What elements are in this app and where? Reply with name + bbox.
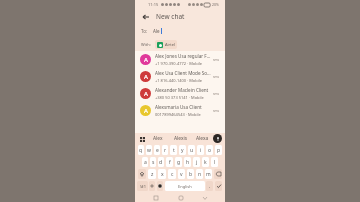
staticText: New chat xyxy=(156,12,185,21)
button[interactable]: d xyxy=(158,157,164,167)
button[interactable]: p xyxy=(215,145,222,155)
staticText: 0017899464543 · Mobile xyxy=(155,112,201,117)
button[interactable]: t xyxy=(170,145,177,155)
button[interactable]: Backspace xyxy=(214,169,222,179)
staticText: x xyxy=(161,171,164,178)
staticText: Alexander Maclein Client xyxy=(155,87,209,93)
button[interactable]: Settings xyxy=(149,181,155,191)
button[interactable]: a xyxy=(142,157,148,167)
staticText: sms xyxy=(213,58,220,62)
button[interactable]: !#1 xyxy=(137,181,148,191)
staticText: r xyxy=(164,147,167,154)
staticText: y xyxy=(181,147,184,154)
staticText: p xyxy=(217,147,221,154)
button[interactable]: . xyxy=(206,181,213,191)
staticText: 11:15 xyxy=(148,2,159,7)
staticText: h xyxy=(186,159,190,166)
staticText: sms xyxy=(213,109,220,113)
button[interactable]: y xyxy=(179,145,186,155)
staticText: +380 50 373 5141 · Mobile xyxy=(155,95,204,100)
staticText: To: xyxy=(141,28,148,34)
button[interactable]: A xyxy=(135,102,225,119)
button[interactable]: A xyxy=(135,68,225,85)
button[interactable]: m xyxy=(205,169,212,179)
button[interactable]: Back xyxy=(201,194,208,201)
staticText: d xyxy=(159,159,163,166)
button[interactable]: Alex xyxy=(146,133,169,144)
staticText: !#1 xyxy=(140,184,146,189)
button[interactable]: j xyxy=(193,157,200,167)
button[interactable]: c xyxy=(168,169,176,179)
button[interactable]: Language xyxy=(157,181,163,191)
staticText: A xyxy=(144,73,148,81)
button[interactable]: i xyxy=(197,145,204,155)
button[interactable]: Done xyxy=(215,181,222,191)
staticText: Alex Usa Client Mode Solar Site xyxy=(155,70,211,76)
staticText: g xyxy=(177,159,181,166)
staticText: . xyxy=(209,183,211,190)
button[interactable]: Recents xyxy=(152,194,159,201)
staticText: z xyxy=(151,171,154,178)
staticText: o xyxy=(208,147,212,154)
button[interactable]: A xyxy=(135,51,225,68)
button[interactable]: n xyxy=(196,169,203,179)
staticText: b xyxy=(189,171,193,178)
button[interactable]: k xyxy=(202,157,209,167)
staticText: English xyxy=(178,184,192,189)
staticText: Alexa xyxy=(196,135,209,142)
staticText: With: xyxy=(141,42,151,47)
staticText: Alex Jones Usa regular Fiverr ... xyxy=(155,53,211,59)
staticText: m xyxy=(206,171,211,178)
button[interactable]: w xyxy=(146,145,152,155)
staticText: l xyxy=(214,159,216,166)
staticText: sms xyxy=(213,75,220,79)
staticText: A xyxy=(144,90,148,98)
button[interactable]: Alexa xyxy=(191,133,213,144)
button[interactable]: Keyboard menu xyxy=(138,135,146,143)
staticText: sms xyxy=(213,92,220,96)
staticText: w xyxy=(147,147,151,154)
button[interactable]: A xyxy=(135,85,225,102)
button[interactable]: r xyxy=(162,145,168,155)
button[interactable]: Home xyxy=(177,194,184,201)
staticText: Alexsmaria Usa Client xyxy=(155,104,202,110)
staticText: A xyxy=(144,107,148,115)
staticText: Ale xyxy=(153,28,160,34)
button[interactable]: o xyxy=(206,145,213,155)
button[interactable]: s xyxy=(150,157,156,167)
button[interactable]: u xyxy=(188,145,195,155)
staticText: a xyxy=(144,159,147,166)
staticText: Alex xyxy=(153,135,163,142)
button[interactable]: z xyxy=(148,169,156,179)
staticText: e xyxy=(156,147,159,154)
button[interactable]: b xyxy=(187,169,194,179)
staticText: +1 970-390-4772 · Mobile xyxy=(155,61,203,66)
staticText: t xyxy=(173,147,175,154)
staticText: Airtel xyxy=(165,42,175,47)
staticText: 20% xyxy=(212,2,219,7)
staticText: n xyxy=(198,171,202,178)
button[interactable]: f xyxy=(166,157,173,167)
staticText: s xyxy=(152,159,155,166)
staticText: k xyxy=(204,159,207,166)
button[interactable]: l xyxy=(211,157,218,167)
staticText: A xyxy=(144,56,148,64)
button[interactable]: Voice input xyxy=(213,134,222,143)
button[interactable]: e xyxy=(154,145,160,155)
button[interactable]: Airtel xyxy=(155,40,177,49)
staticText: i xyxy=(200,147,202,154)
button[interactable]: English xyxy=(165,181,205,191)
button[interactable]: q xyxy=(138,145,144,155)
button[interactable]: x xyxy=(158,169,166,179)
button[interactable]: Back xyxy=(140,11,151,22)
staticText: q xyxy=(139,147,143,154)
button[interactable]: v xyxy=(178,169,185,179)
button[interactable]: Alexis xyxy=(169,133,191,144)
staticText: +1 816-440-1400 · Mobile xyxy=(155,78,203,83)
staticText: f xyxy=(169,159,171,166)
staticText: u xyxy=(190,147,194,154)
button[interactable]: h xyxy=(184,157,191,167)
staticText: Alexis xyxy=(174,135,187,142)
button[interactable]: g xyxy=(175,157,182,167)
button[interactable]: Shift xyxy=(138,169,146,179)
